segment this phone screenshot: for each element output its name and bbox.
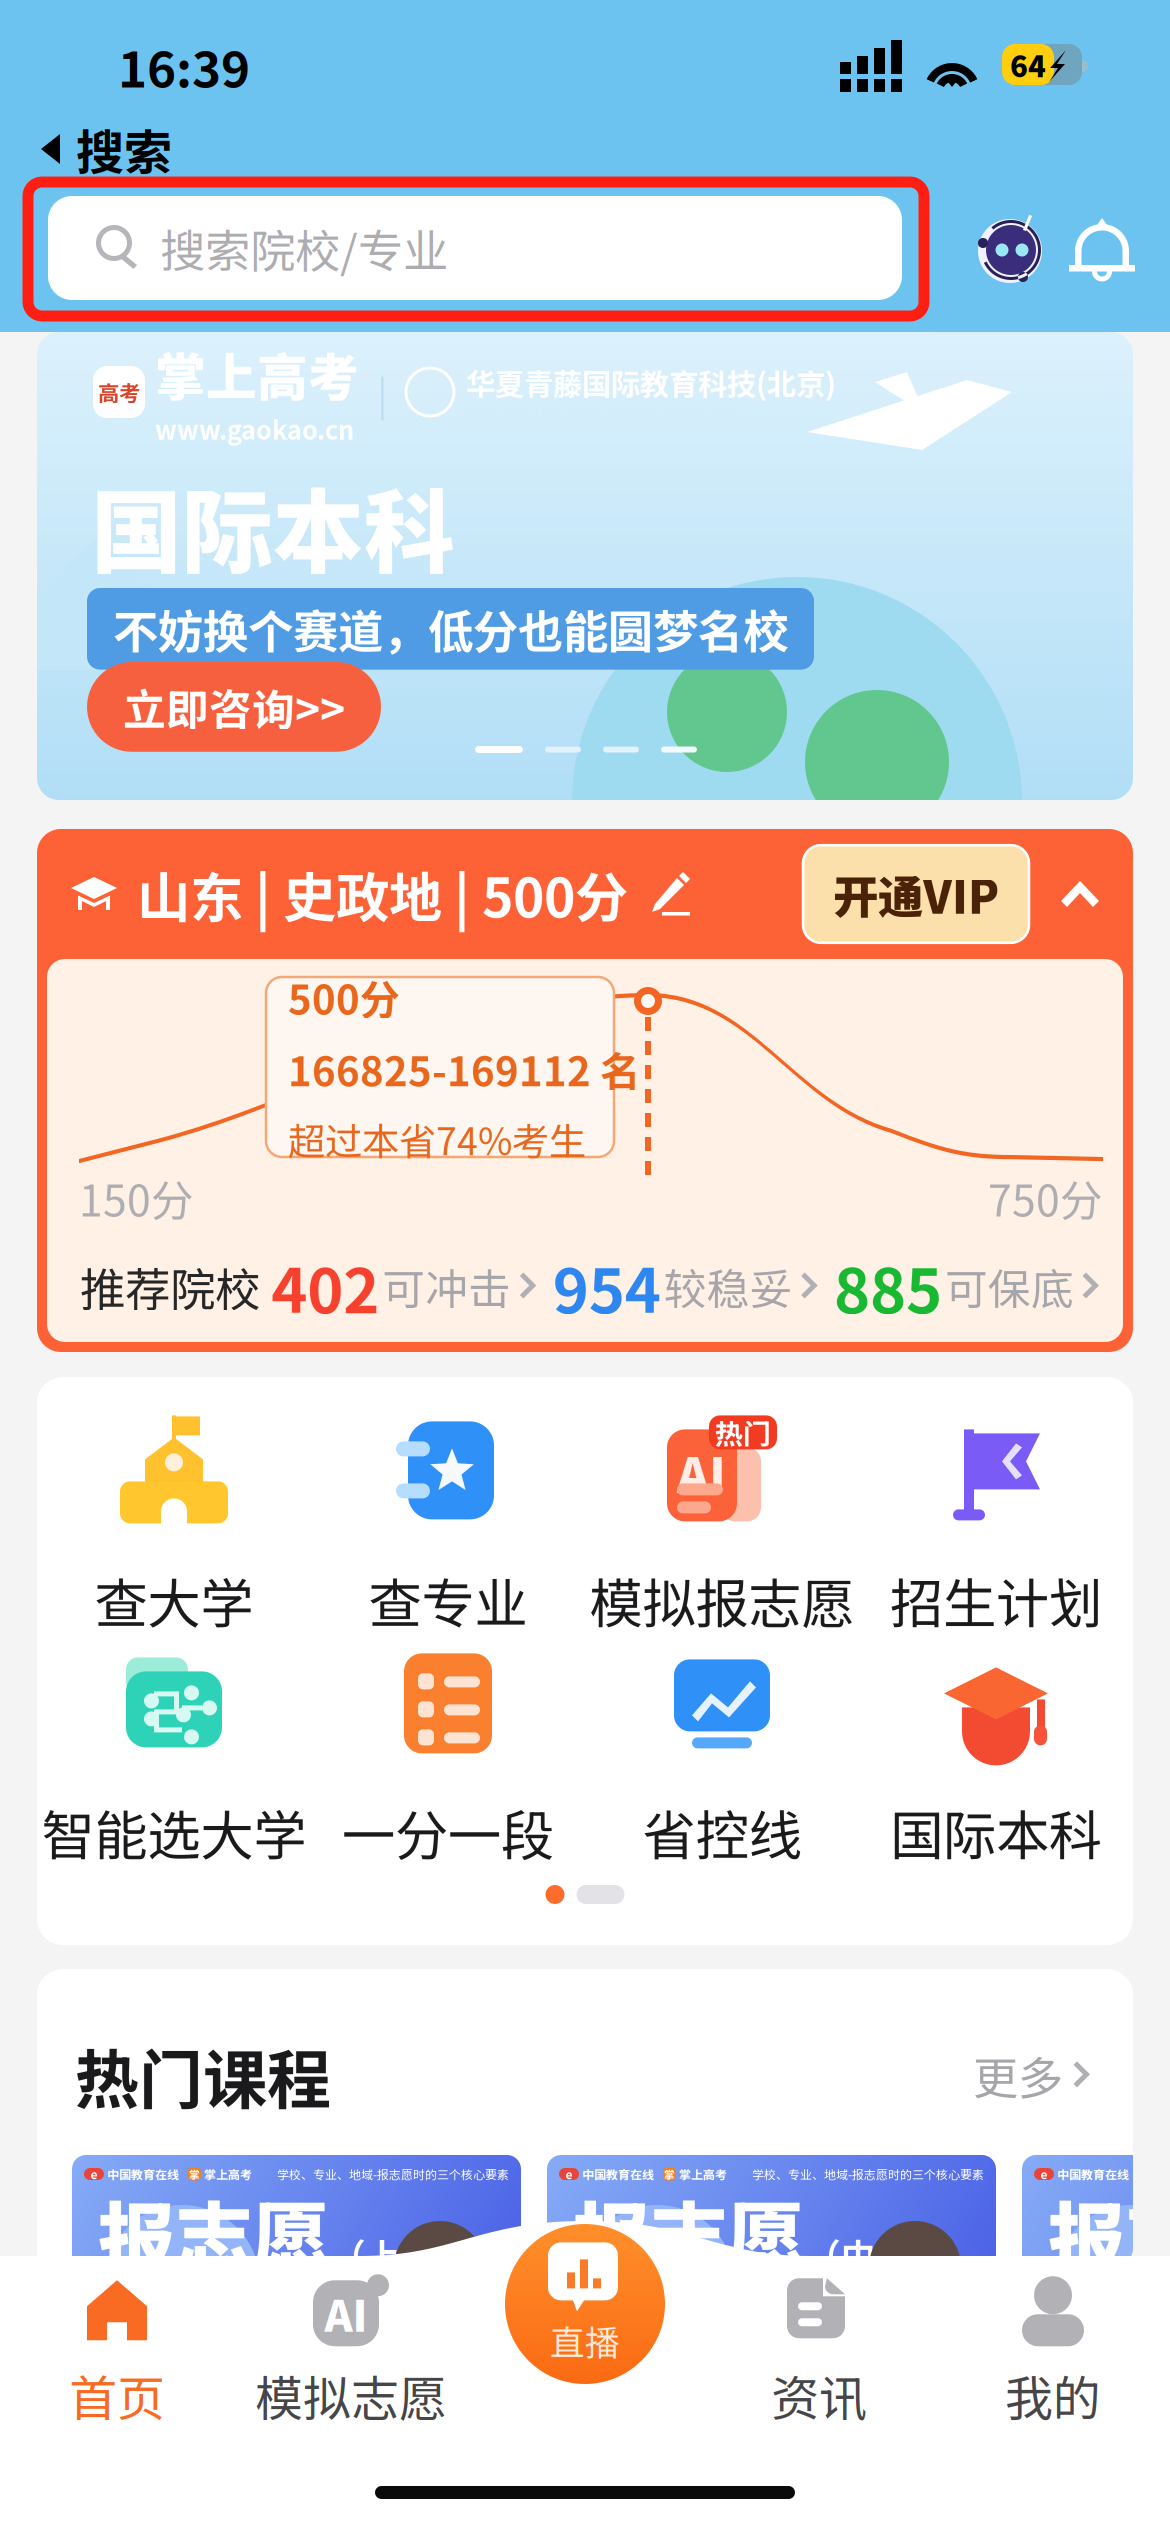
staticText: 热门 [715,1412,771,1453]
button[interactable]: 招生计划 [859,1417,1133,1643]
button[interactable]: 直播 [505,2224,665,2384]
button[interactable]: 收起 [1059,875,1103,913]
staticText: 模拟报志愿 [589,1561,854,1639]
staticText: 省控线 [642,1793,801,1871]
button[interactable]: AI [234,2276,468,2436]
staticText: 国际本科 [890,1793,1102,1871]
button[interactable]: 954 [553,1242,823,1331]
staticText: e [90,2165,97,2183]
staticText: 中国教育在线 [582,2165,654,2183]
staticText: 更多 [973,2042,1063,2108]
staticText: 学校、专业、地域-报志愿时的三个核心要素 [277,2165,509,2183]
staticText: 报志愿 [1048,2177,1170,2289]
button[interactable]: e [547,2155,996,2407]
staticText: www.gaokao.cn [155,410,354,447]
staticText: （中） [806,2229,911,2279]
staticText: 我的 [1005,2360,1101,2430]
button[interactable]: 首页 [0,2276,234,2436]
button[interactable]: 885 [834,1242,1104,1331]
staticText: 150分 [79,1167,194,1229]
staticText: e [1040,2165,1047,2183]
button[interactable]: 一分一段 [311,1649,585,1875]
button[interactable]: 搜索 [0,122,1170,176]
button[interactable]: 402 [271,1242,541,1331]
staticText: 可保底 [945,1256,1074,1317]
staticText: e [565,2165,572,2183]
staticText: 热门课程 [75,2029,331,2122]
staticText: 华夏青藤国际教育科技(北京) [466,361,836,404]
staticText: 16:39 [118,30,250,102]
button[interactable]: e [72,2155,521,2407]
staticText: 掌上高考 [679,2165,727,2183]
staticText: 智能选大学 [41,1793,306,1871]
staticText: 高考 [98,377,140,407]
staticText: 招生计划 [890,1561,1102,1639]
staticText: 国际本科 [91,460,455,591]
staticText: 学校、专业、地域-报志愿时的三个核心要素 [752,2165,984,2183]
staticText: 中国教育在线 [107,2165,179,2183]
staticText: AI [324,2282,367,2344]
staticText: 直播 [550,2315,620,2366]
button[interactable]: 资讯 [702,2276,936,2436]
staticText: 查大学 [94,1561,253,1639]
staticText: 402 [271,1242,379,1331]
staticText: 模拟志愿 [255,2360,447,2430]
button[interactable]: 省控线 [585,1649,859,1875]
button[interactable]: 通知 [1068,210,1142,288]
staticText: 推荐院校 [80,1254,260,1319]
staticText: 掌上高考 [155,337,359,410]
staticText: 开通VIP [833,861,999,927]
button[interactable]: 更多 [973,2042,1095,2108]
button[interactable]: 查专业 [311,1417,585,1643]
staticText: 报志愿 [573,2177,804,2289]
staticText: 首页 [69,2360,165,2430]
button[interactable]: 我的 [936,2276,1170,2436]
staticText: 山东 | 史政地 | 500分 [137,855,628,933]
staticText: 立即咨询>> [123,676,345,738]
staticText: 查专业 [368,1561,527,1639]
button[interactable]: 查大学 [37,1417,311,1643]
staticText: 500分 [288,968,400,1026]
button[interactable]: 智能选大学 [37,1649,311,1875]
button[interactable]: AI [585,1417,859,1643]
staticText: 掌 [189,2166,200,2182]
staticText: 885 [834,1242,942,1331]
staticText: 搜索 [76,114,172,184]
staticText: 954 [553,1242,661,1331]
staticText: AI [677,1437,726,1507]
staticText: 750分 [988,1167,1103,1229]
staticText: 超过本省74%考生 [288,1112,586,1166]
staticText: 掌上高考 [204,2165,252,2183]
staticText: 64 [1010,43,1046,86]
button[interactable]: 国际本科 [859,1649,1133,1875]
staticText: 报志愿 [98,2177,329,2289]
button[interactable]: 搜索院校/专业 [28,182,924,316]
button[interactable]: 高考 [37,332,1133,800]
staticText: 可冲击 [382,1256,511,1317]
staticText: 中国教育在线 [1057,2165,1129,2183]
button[interactable]: e [1022,2155,1170,2407]
staticText: | [377,363,388,421]
staticText: 搜索院校/专业 [160,215,448,281]
staticText: 较稳妥 [664,1256,793,1317]
button[interactable]: AI 助手 [970,207,1054,291]
staticText: 一分一段 [342,1793,554,1871]
staticText: （上） [331,2229,436,2279]
staticText: 166825-169112 名 [288,1040,640,1098]
staticText: 不妨换个赛道，低分也能圆梦名校 [113,596,788,662]
button[interactable]: 开通VIP [803,845,1029,943]
staticText: 掌 [664,2166,675,2182]
staticText: 资讯 [771,2360,867,2430]
